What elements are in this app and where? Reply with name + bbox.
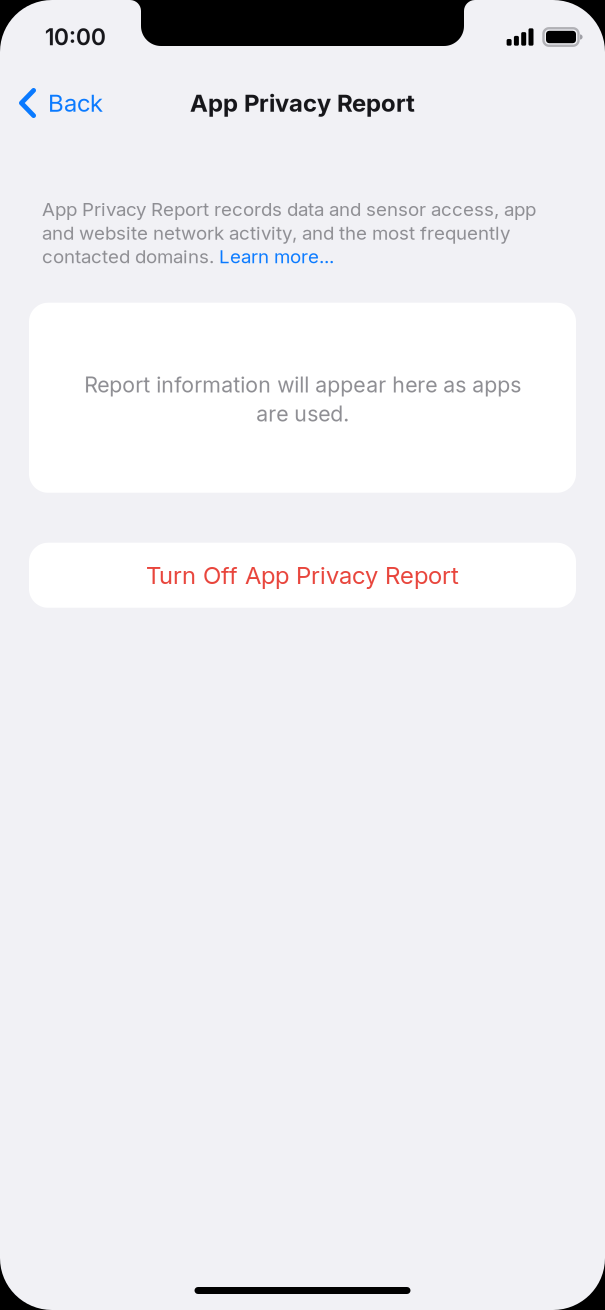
button[interactable]: Turn Off App Privacy Report <box>29 543 576 608</box>
staticText: Report information will appear here as a… <box>84 372 521 426</box>
staticText: App Privacy Report <box>190 88 415 117</box>
staticText: App Privacy Report records data and sens… <box>42 198 536 268</box>
button[interactable]: Back <box>0 77 119 129</box>
staticText: Back <box>48 88 103 117</box>
staticText: Turn Off App Privacy Report <box>146 561 459 590</box>
staticText: 10:00 <box>45 23 106 51</box>
